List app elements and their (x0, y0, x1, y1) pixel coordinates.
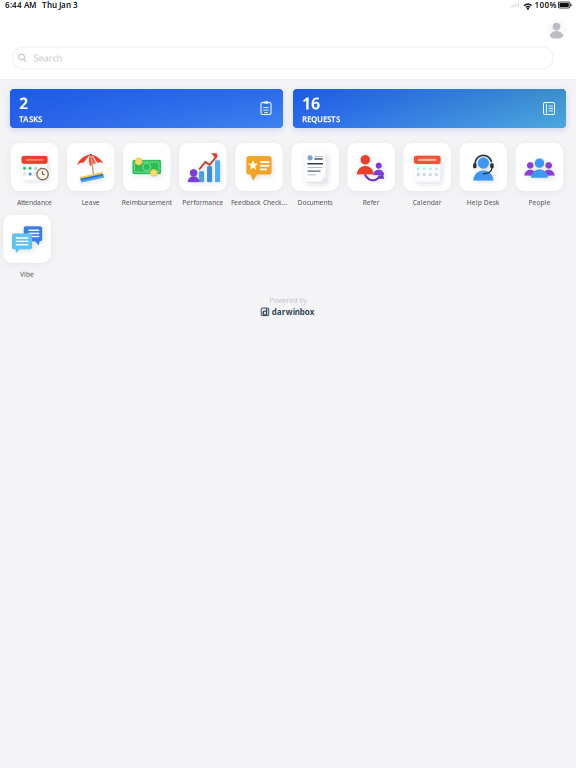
staticText: People (528, 198, 550, 207)
staticText: REQUESTS (302, 114, 340, 124)
button[interactable]: Attendance (6, 143, 63, 207)
staticText: 100% (534, 0, 556, 10)
button[interactable]: Reimbursement (119, 143, 175, 207)
button[interactable]: Documents (287, 143, 343, 207)
staticText: 2 (19, 93, 28, 114)
button[interactable]: Performance (175, 143, 231, 207)
staticText: Attendance (17, 198, 52, 207)
button[interactable]: Leave (63, 143, 119, 207)
button[interactable]: Search (12, 47, 553, 69)
staticText: darwinbox (272, 307, 315, 317)
staticText: Performance (182, 198, 223, 207)
staticText: Documents (297, 198, 332, 207)
staticText: TASKS (19, 114, 42, 124)
button[interactable]: People (511, 143, 567, 207)
staticText: Reimbursement (122, 198, 172, 207)
button[interactable]: Profile (547, 20, 566, 39)
staticText: Vibe (20, 270, 34, 279)
staticText: Refer (363, 198, 380, 207)
staticText: Feedback Check... (231, 198, 287, 207)
button[interactable]: Calendar (399, 143, 455, 207)
staticText: Powered by (269, 296, 306, 305)
button[interactable]: Refer (343, 143, 399, 207)
staticText: Search (33, 52, 62, 64)
staticText: Calendar (413, 198, 442, 207)
staticText: Thu Jan 3 (36, 0, 78, 10)
button[interactable]: 2 (10, 89, 283, 128)
button[interactable]: Help Desk (455, 143, 511, 207)
staticText: 6:44 AM (5, 0, 36, 10)
button[interactable]: Vibe (0, 215, 55, 279)
button[interactable]: Feedback Check... (231, 143, 287, 207)
staticText: Leave (82, 198, 100, 207)
staticText: 16 (302, 93, 320, 114)
button[interactable]: 16 (293, 89, 566, 128)
staticText: d (262, 306, 268, 318)
staticText: Help Desk (467, 198, 500, 207)
